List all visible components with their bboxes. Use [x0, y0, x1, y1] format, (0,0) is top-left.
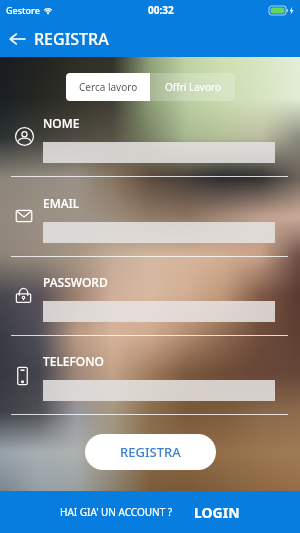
staticText: Offri Lavoro — [165, 80, 221, 94]
button[interactable]: Cerca lavoro — [66, 73, 150, 101]
staticText: EMAIL — [43, 195, 80, 211]
button[interactable]: REGISTRA — [85, 434, 216, 470]
staticText: NOME — [43, 115, 80, 131]
button[interactable] — [43, 142, 275, 163]
button[interactable]: HAI GIA' UN ACCOUNT ? — [0, 491, 300, 533]
staticText: TELEFONO — [43, 353, 104, 369]
staticText: LOGIN — [194, 503, 240, 522]
staticText: REGISTRA — [34, 28, 109, 50]
staticText: REGISTRA — [120, 443, 181, 461]
button[interactable] — [43, 380, 275, 401]
staticText: Gestore — [6, 4, 40, 16]
staticText: HAI GIA' UN ACCOUNT ? — [60, 505, 173, 519]
button[interactable]: Back — [0, 20, 34, 57]
staticText: PASSWORD — [43, 274, 108, 290]
staticText: 00:32 — [148, 3, 174, 17]
button[interactable]: Offri Lavoro — [150, 73, 235, 101]
button[interactable] — [43, 301, 275, 322]
staticText: Cerca lavoro — [79, 80, 138, 94]
